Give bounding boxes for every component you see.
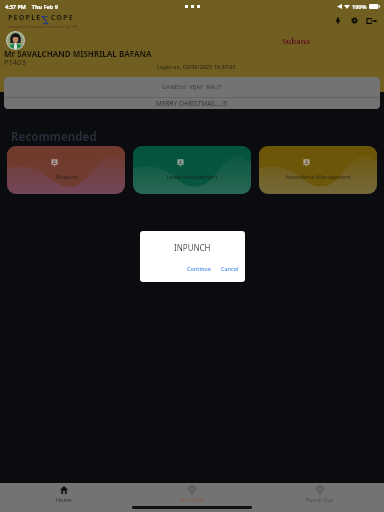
- button[interactable]: Continue: [184, 263, 214, 274]
- button[interactable]: Notifications: [329, 14, 346, 27]
- staticText: Suhana: [282, 36, 311, 46]
- staticText: integrated modular solutions for HR: [8, 24, 78, 30]
- staticText: Mr SAVALCHAND MISHRILAL BAFANA: [4, 48, 152, 59]
- staticText: 4:37 PM Thu Feb 9: [5, 3, 58, 10]
- staticText: Login on, 02/09/2023 16:37:03: [157, 63, 236, 70]
- staticText: Punch In: [181, 496, 204, 503]
- staticText: MERRY CHRISTMAS....!!!: [156, 99, 228, 108]
- staticText: Mailpost: [55, 173, 78, 180]
- staticText: Cancel: [221, 265, 239, 272]
- staticText: Home: [56, 496, 72, 503]
- staticText: 100%: [352, 3, 367, 10]
- staticText: Punch Out: [306, 496, 334, 503]
- staticText: Recommended: [11, 129, 97, 145]
- button[interactable]: MERRY CHRISTMAS....!!!: [4, 98, 380, 109]
- button[interactable]: Home: [0, 483, 128, 506]
- staticText: INPUNCH: [174, 242, 211, 253]
- staticText: Continue: [187, 265, 211, 272]
- button[interactable]: Mailpost: [7, 146, 125, 194]
- button[interactable]: Settings: [346, 14, 363, 27]
- staticText: Leave Management: [166, 173, 218, 180]
- staticText: GANESH VIJAY RAUT: [162, 83, 222, 91]
- staticText: P1403: [4, 57, 26, 67]
- button[interactable]: Punch Out: [256, 483, 384, 506]
- button[interactable]: Attendance Management: [259, 146, 377, 194]
- staticText: Attendance Management: [285, 173, 351, 180]
- button[interactable]: Punch In: [128, 483, 256, 506]
- staticText: PEOPLE COPE: [8, 13, 74, 23]
- button[interactable]: Cancel: [218, 263, 242, 274]
- button[interactable]: Leave Management: [133, 146, 251, 194]
- button[interactable]: GANESH VIJAY RAUT: [4, 77, 380, 97]
- button[interactable]: Logout: [363, 14, 380, 27]
